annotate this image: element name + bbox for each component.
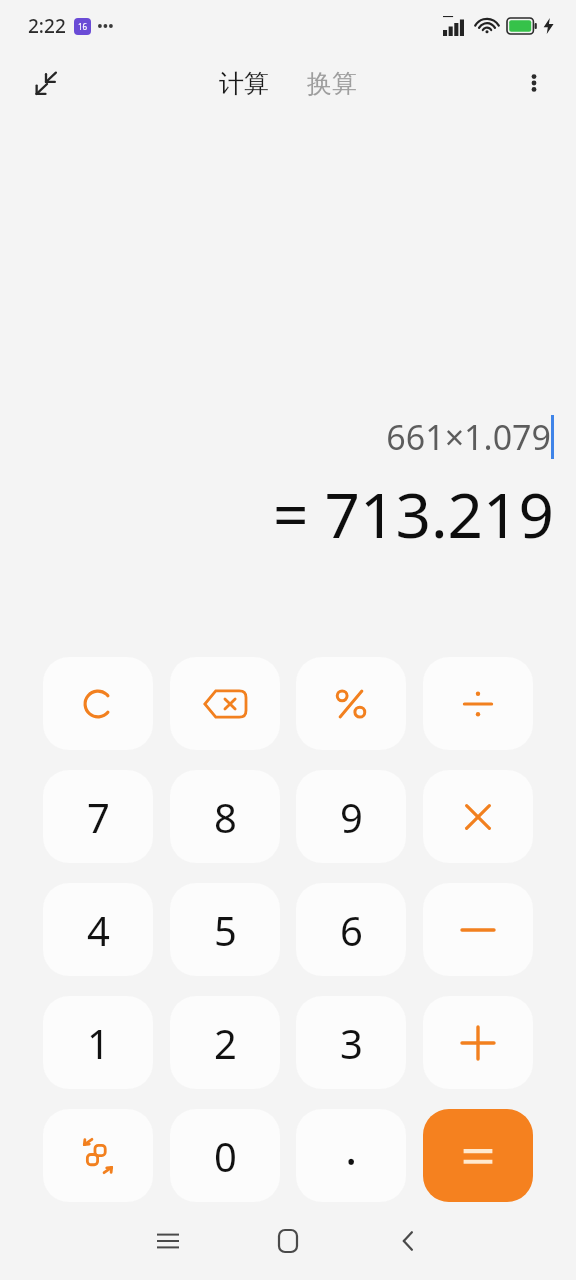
button[interactable]: 1 — [43, 996, 153, 1089]
staticText: 9 — [340, 790, 363, 844]
button[interactable]: 2 — [170, 996, 280, 1089]
button[interactable]: 计算 — [213, 64, 275, 103]
button[interactable]: 4 — [43, 883, 153, 976]
staticText: 0 — [214, 1129, 237, 1183]
button[interactable]: 7 — [43, 770, 153, 863]
staticText: 16 — [78, 21, 88, 32]
staticText: 2:22 — [28, 13, 66, 39]
button[interactable]: . — [296, 1109, 406, 1202]
button[interactable]: 6 — [296, 883, 406, 976]
button[interactable]: Percent — [296, 657, 406, 750]
staticText: 1 — [87, 1016, 110, 1070]
staticText: 5 — [214, 903, 237, 957]
button[interactable]: Divide — [423, 657, 533, 750]
button[interactable]: 0 — [170, 1109, 280, 1202]
button[interactable]: Backspace — [170, 657, 280, 750]
button[interactable]: Multiply — [423, 770, 533, 863]
button[interactable]: Scientific — [43, 1109, 153, 1202]
button[interactable]: Back — [381, 1214, 435, 1268]
button[interactable]: 9 — [296, 770, 406, 863]
staticText: 7 — [87, 790, 110, 844]
staticText: 4 — [87, 903, 110, 957]
staticText: 计算 — [219, 68, 269, 99]
staticText: 2 — [214, 1016, 237, 1070]
staticText: . — [345, 1116, 358, 1179]
staticText: 8 — [214, 790, 237, 844]
button[interactable]: Collapse — [22, 59, 70, 107]
button[interactable]: 5 — [170, 883, 280, 976]
staticText: 6 — [340, 903, 363, 957]
staticText: 换算 — [307, 68, 357, 99]
button[interactable]: Home — [261, 1214, 315, 1268]
button[interactable]: 换算 — [301, 64, 363, 103]
button[interactable]: Equals — [423, 1109, 533, 1202]
staticText: 3 — [340, 1016, 363, 1070]
button[interactable]: Plus — [423, 996, 533, 1089]
button[interactable]: More options — [510, 59, 558, 107]
button[interactable]: Minus — [423, 883, 533, 976]
staticText: = 713.219 — [273, 472, 554, 556]
button[interactable]: Recent apps — [141, 1214, 195, 1268]
staticText: 661×1.079 — [386, 414, 551, 460]
button[interactable]: 3 — [296, 996, 406, 1089]
button[interactable]: 8 — [170, 770, 280, 863]
button[interactable]: Clear — [43, 657, 153, 750]
